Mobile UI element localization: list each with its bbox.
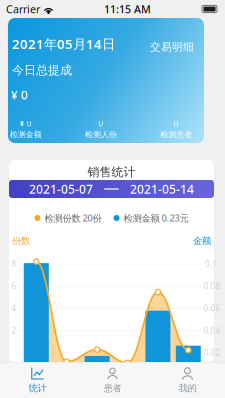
staticText: Carrier [6,2,40,16]
button[interactable]: 2021-05-07 [9,180,214,198]
staticText: 11:15 AM [104,2,151,16]
staticText: 检测份数 20份 [44,212,101,224]
staticText: ¥ 0 [11,87,28,103]
staticText: 检测人份 [85,130,117,139]
staticText: 6 [11,281,16,291]
staticText: 2021-05-14 [130,181,194,197]
staticText: 我的 [178,382,196,394]
staticText: 0 [174,118,179,129]
staticText: 0.04 [203,325,220,336]
staticText: 检测金额 [10,130,42,139]
staticText: 金额 [193,235,211,247]
staticText: 检测金额 0.23元 [123,212,188,224]
staticText: 2 [11,325,16,336]
staticText: 0.02 [203,347,220,358]
staticText: 检测患者 [160,130,192,139]
staticText: 8 [11,258,16,269]
staticText: 患者 [103,382,121,394]
staticText: 0.06 [203,303,220,313]
staticText: 交易明细 [150,40,194,53]
button[interactable]: 患者 [75,362,150,398]
button[interactable]: 统计 [0,362,75,398]
button[interactable]: 交易明细 [150,41,194,53]
staticText: 今日总提成 [12,63,72,78]
staticText: 销售统计 [87,165,135,179]
staticText: 份数 [12,235,30,247]
staticText: 2021-05-07 [29,181,93,197]
staticText: 2021年05月14日 [12,35,115,53]
staticText: 统计 [28,382,46,394]
staticText: 0 [98,118,103,129]
button[interactable]: 我的 [150,362,225,398]
staticText: ¥ 0 [20,118,32,129]
staticText: 0.1 [205,258,217,269]
staticText: 0.08 [203,281,220,291]
staticText: 4 [11,303,16,313]
